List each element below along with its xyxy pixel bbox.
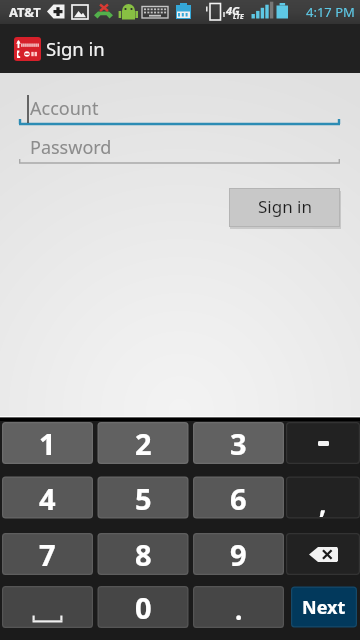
staticText: Account: [30, 96, 99, 121]
button[interactable]: Space: [2, 586, 93, 628]
button[interactable]: 0: [98, 586, 189, 628]
staticText: 3: [230, 424, 247, 463]
button[interactable]: Account: [0, 94, 360, 127]
staticText: AT&T: [9, 3, 41, 21]
staticText: 7: [39, 535, 56, 574]
button[interactable]: 3: [193, 422, 284, 464]
button[interactable]: Next: [291, 587, 357, 628]
staticText: 4: [39, 479, 56, 518]
staticText: Password: [30, 135, 112, 160]
staticText: Sign in: [258, 195, 312, 218]
staticText: Sign in: [46, 36, 105, 61]
button[interactable]: 2: [98, 422, 189, 464]
staticText: 4:17 PM: [306, 3, 355, 21]
staticText: ,: [319, 486, 327, 521]
staticText: Next: [302, 595, 346, 620]
button[interactable]: .: [193, 586, 284, 628]
button[interactable]: 4: [2, 477, 93, 519]
button[interactable]: ,: [286, 477, 360, 519]
button[interactable]: 6: [193, 477, 284, 519]
button[interactable]: 7: [2, 533, 93, 575]
staticText: 4G: [226, 3, 240, 18]
staticText: 6: [230, 479, 247, 518]
staticText: LTE: [233, 12, 244, 22]
button[interactable]: [286, 422, 360, 464]
staticText: 9: [230, 535, 247, 574]
button[interactable]: 9: [193, 533, 284, 575]
button[interactable]: 1: [2, 422, 93, 464]
staticText: 0: [135, 588, 152, 627]
staticText: 1: [39, 424, 56, 463]
staticText: 5: [135, 479, 152, 518]
staticText: 8: [135, 535, 152, 574]
button[interactable]: Sign in: [229, 188, 340, 227]
button[interactable]: Password: [0, 133, 360, 166]
button[interactable]: Delete: [286, 533, 360, 575]
staticText: 2: [135, 424, 152, 463]
button[interactable]: App icon: [14, 37, 41, 61]
button[interactable]: 8: [98, 533, 189, 575]
button[interactable]: 5: [98, 477, 189, 519]
staticText: .: [235, 592, 243, 627]
